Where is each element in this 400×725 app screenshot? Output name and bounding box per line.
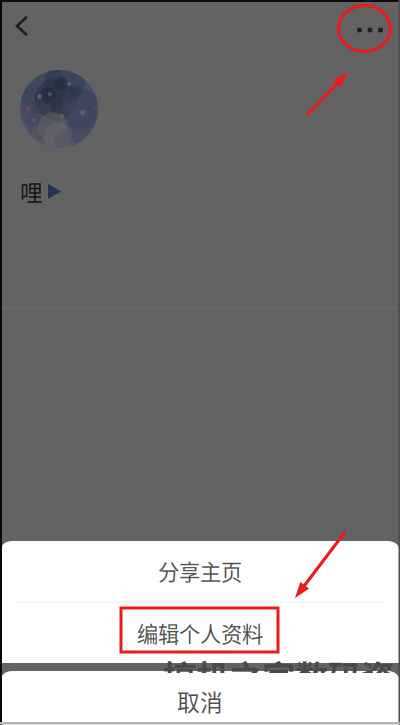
staticText: 分享主页 xyxy=(158,556,242,586)
staticText: 取消 xyxy=(177,685,223,717)
button[interactable]: 取消 xyxy=(0,671,400,725)
button[interactable]: More options xyxy=(346,8,394,52)
button[interactable]: 分享主页 xyxy=(0,540,400,601)
staticText: 搞机之家数码资讯网 xyxy=(163,651,394,725)
button[interactable]: 编辑个人资料 xyxy=(0,602,400,663)
staticText: 编辑个人资料 xyxy=(137,618,263,648)
staticText: 哩 xyxy=(20,175,43,208)
button[interactable]: Back xyxy=(0,4,44,48)
